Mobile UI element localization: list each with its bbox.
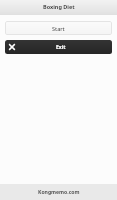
button[interactable]: Start bbox=[5, 21, 112, 35]
button[interactable]: Kongmemo.com bbox=[0, 184, 117, 200]
other: Exit bbox=[9, 44, 15, 50]
staticText: Exit bbox=[56, 44, 66, 51]
staticText: Kongmemo.com bbox=[38, 189, 80, 196]
staticText: Start bbox=[52, 25, 65, 32]
button[interactable]: Exit bbox=[5, 40, 112, 54]
staticText: Boxing Diet bbox=[43, 3, 75, 10]
